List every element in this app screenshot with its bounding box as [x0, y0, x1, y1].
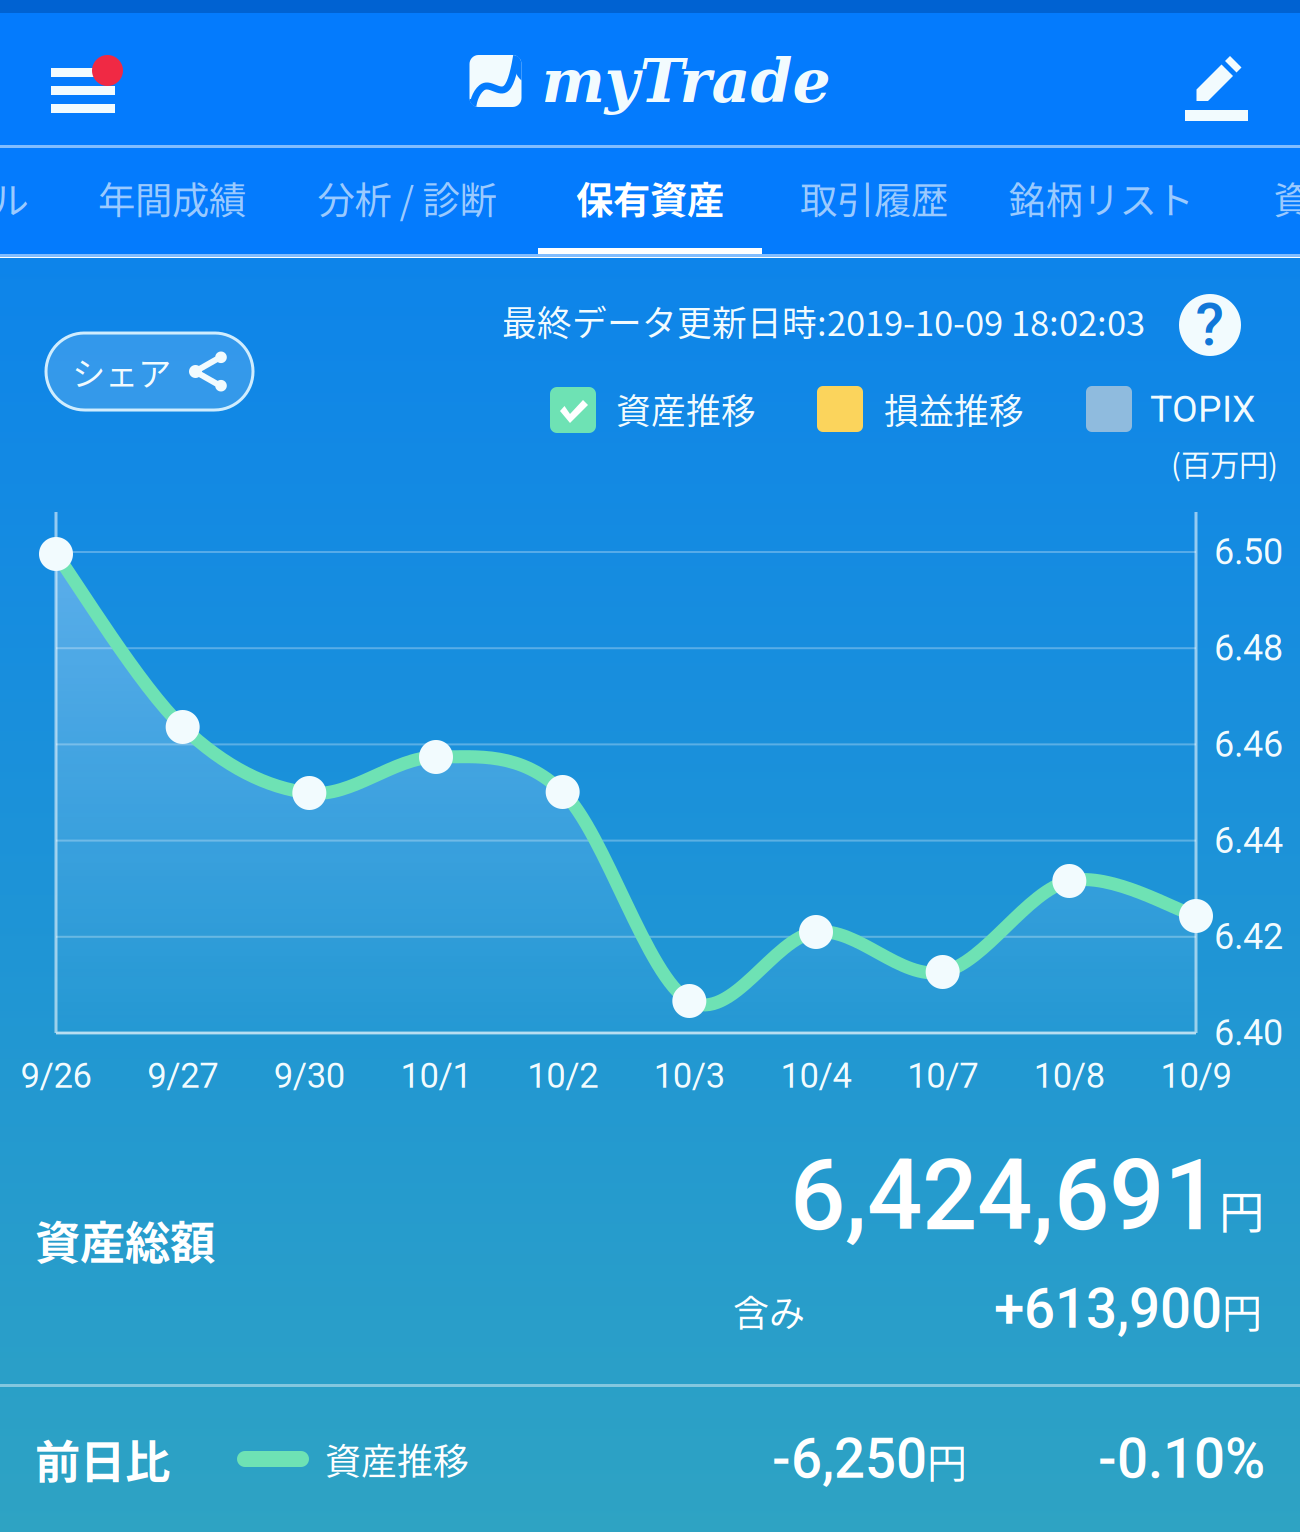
staticText: 9/26 — [20, 1056, 91, 1096]
staticText: ? — [1195, 291, 1224, 359]
staticText: 円 — [1219, 1177, 1264, 1242]
staticText: 9/27 — [147, 1056, 218, 1096]
staticText: 6.50 — [1214, 531, 1283, 573]
staticText: ル — [0, 171, 28, 225]
staticText: 含み — [733, 1285, 805, 1337]
staticText: 9/30 — [274, 1056, 345, 1096]
staticText: 10/9 — [1160, 1056, 1231, 1096]
staticText: 6.46 — [1214, 723, 1283, 765]
staticText: 10/8 — [1034, 1056, 1105, 1096]
button[interactable]: Menu — [0, 13, 170, 145]
staticText: 資産総額 — [35, 1207, 215, 1273]
staticText: +613,900 — [994, 1277, 1222, 1341]
staticText: -6,250 — [772, 1427, 927, 1491]
staticText: 最終データ更新日時:2019-10-09 18:02:03 — [502, 296, 1145, 346]
staticText: 銘柄リスト — [1008, 171, 1193, 225]
staticText: 10/7 — [907, 1056, 978, 1096]
staticText: 資産推移 — [325, 1433, 469, 1485]
staticText: 年間成績 — [98, 171, 246, 225]
staticText: 分析 / 診断 — [317, 171, 496, 225]
staticText: 円 — [1222, 1281, 1262, 1339]
staticText: 資産推移 — [616, 384, 756, 434]
staticText: 6.40 — [1214, 1012, 1283, 1054]
staticText: 損益推移 — [884, 384, 1024, 434]
staticText: (百万円) — [1171, 442, 1278, 484]
staticText: 6,424,691 — [790, 1139, 1219, 1253]
staticText: -0.10% — [1098, 1427, 1265, 1491]
button[interactable]: 保有資産 — [538, 148, 762, 254]
staticText: 10/3 — [654, 1056, 725, 1096]
button[interactable]: 分析 / 診断 — [285, 148, 529, 254]
button[interactable]: Edit — [1150, 13, 1300, 145]
staticText: myTrade — [541, 46, 830, 116]
button[interactable]: ル — [0, 148, 85, 254]
button[interactable]: シェア — [46, 333, 253, 410]
button[interactable]: Help — [1179, 294, 1241, 356]
button[interactable]: 銘柄リスト — [979, 148, 1223, 254]
button[interactable]: 年間成績 — [60, 148, 284, 254]
staticText: 取引履歴 — [800, 171, 948, 225]
staticText: 6.44 — [1214, 819, 1283, 862]
staticText: 10/2 — [527, 1056, 598, 1096]
button[interactable]: 取引履歴 — [762, 148, 986, 254]
staticText: 円 — [927, 1431, 967, 1489]
staticText: 資 — [1273, 171, 1300, 225]
staticText: 前日比 — [35, 1426, 170, 1492]
staticText: 6.48 — [1214, 627, 1283, 669]
staticText: 10/1 — [400, 1056, 471, 1096]
staticText: 6.42 — [1214, 916, 1283, 958]
staticText: 保有資産 — [576, 171, 724, 225]
staticText: TOPIX — [1150, 387, 1255, 431]
staticText: シェア — [72, 347, 171, 396]
button[interactable]: 資 — [1217, 148, 1300, 254]
staticText: 10/4 — [780, 1056, 851, 1096]
